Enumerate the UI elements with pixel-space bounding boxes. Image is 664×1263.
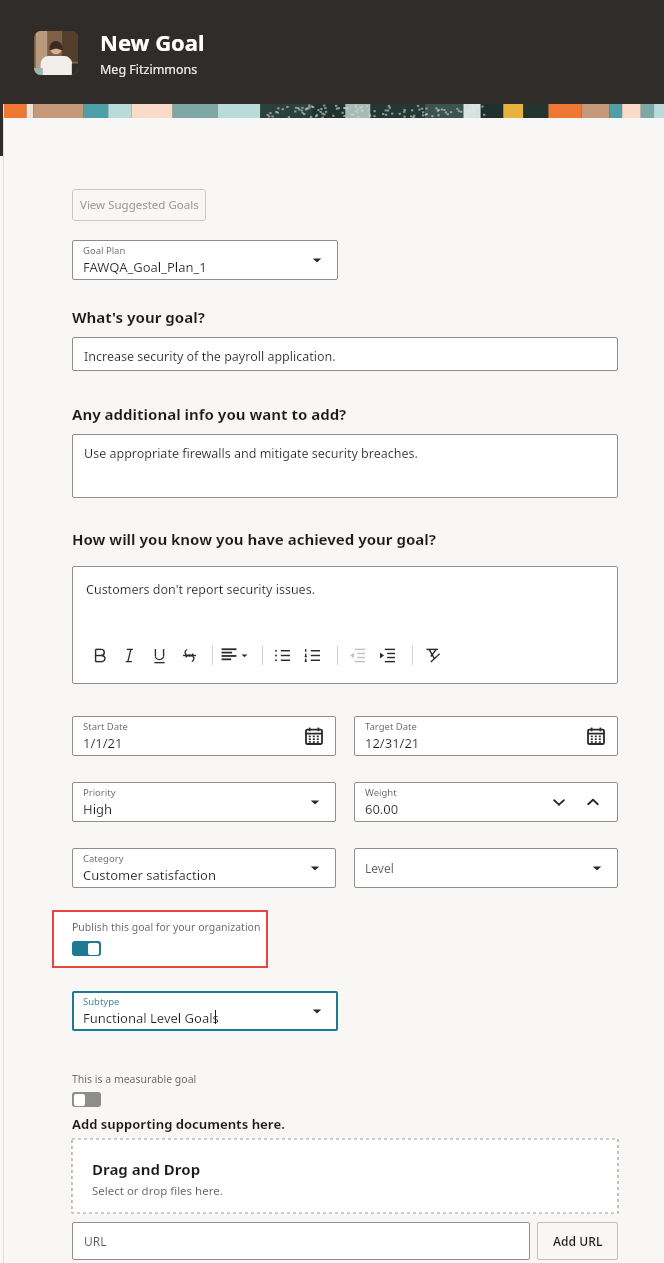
button[interactable]: Pick Target Date [586,726,606,746]
staticText: Level [365,860,394,876]
button[interactable]: Text alignment [217,643,248,667]
staticText: What's your goal? [72,307,205,327]
staticText: High [83,800,113,818]
button[interactable]: Target Date [354,716,618,756]
button[interactable]: Bold [84,640,114,670]
button[interactable]: Decrease indent [342,640,372,670]
button[interactable]: Increase security of the payroll applica… [72,337,618,371]
staticText: FAWQA_Goal_Plan_1 [83,258,207,276]
button[interactable]: Use appropriate firewalls and mitigate s… [72,434,618,498]
staticText: How will you know you have achieved your… [72,529,436,549]
other: Profile photo [34,31,78,75]
staticText: Subtype [83,995,120,1008]
button[interactable]: Clear formatting [417,640,447,670]
staticText: Increase security of the payroll applica… [84,348,336,365]
staticText: Target Date [365,720,417,733]
staticText: Any additional info you want to add? [72,404,347,424]
button[interactable]: Add URL [537,1222,618,1260]
staticText: 12/31/21 [365,734,420,752]
staticText: Functional Level Goals [83,1009,219,1027]
button[interactable]: Toggle on [72,941,101,956]
staticText: Customer satisfaction [83,866,217,884]
button[interactable]: Goal Plan [72,240,338,280]
staticText: Add supporting documents here. [72,1115,285,1133]
staticText: Add URL [553,1233,603,1249]
staticText: Priority [83,786,116,799]
button[interactable]: Weight [354,782,618,822]
button[interactable]: Level [354,848,618,888]
button[interactable]: View Suggested Goals [72,189,206,221]
staticText: View Suggested Goals [80,197,199,213]
staticText: URL [84,1233,107,1249]
staticText: Weight [365,786,397,799]
button[interactable]: Increase indent [372,640,402,670]
button[interactable]: Numbered list [297,640,327,670]
staticText: Drag and Drop [92,1159,201,1179]
button[interactable]: Category [72,848,336,888]
staticText: Start Date [83,720,128,733]
button[interactable]: Priority [72,782,336,822]
staticText: Select or drop files here. [92,1183,223,1199]
button[interactable]: Start Date [72,716,336,756]
button[interactable]: Subtype [72,991,338,1031]
staticText: 60.00 [365,800,399,818]
staticText: Goal Plan [83,244,126,257]
button[interactable]: Italic [114,640,144,670]
staticText: 1/1/21 [83,734,123,752]
staticText: Category [83,852,124,865]
staticText: This is a measurable goal [72,1072,197,1086]
button[interactable]: Strikethrough [174,640,204,670]
button[interactable]: Pick Start Date [304,726,324,746]
staticText: Publish this goal for your organization [72,920,261,934]
staticText: Meg Fitzimmons [100,61,198,78]
staticText: Customers don't report security issues. [86,581,315,598]
button[interactable]: URL [72,1222,530,1260]
button[interactable]: Underline [144,640,174,670]
button[interactable]: Decrease weight [548,791,570,813]
button[interactable]: Publish this goal for your organization [52,910,268,968]
button[interactable]: Toggle off [72,1092,101,1107]
button[interactable]: Increase weight [582,791,604,813]
staticText: New Goal [100,27,205,57]
button[interactable]: Bulleted list [267,640,297,670]
staticText: Use appropriate firewalls and mitigate s… [84,445,418,462]
button[interactable]: Select or drop files [72,1139,618,1213]
